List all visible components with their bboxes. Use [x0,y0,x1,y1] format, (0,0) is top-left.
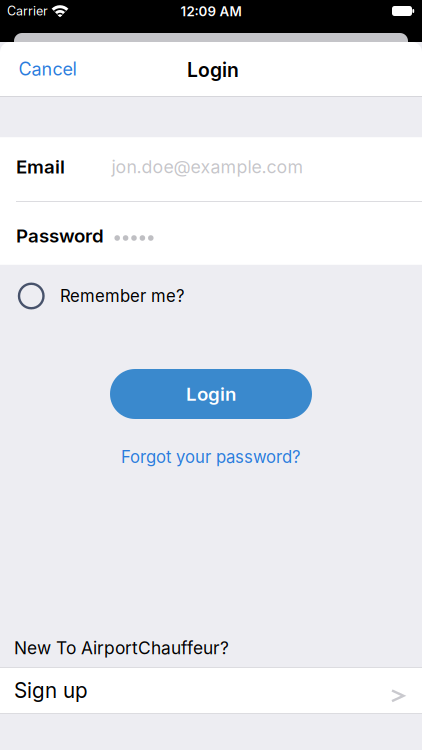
staticText: Email [16,155,65,178]
button[interactable]: Remember me? [0,276,422,316]
button[interactable]: Login [110,369,312,419]
button[interactable]: Sign up [0,668,422,713]
staticText: Forgot your password? [121,447,301,467]
button[interactable]: Password [0,201,422,264]
staticText: Login [187,58,239,82]
staticText: Remember me? [60,286,185,306]
staticText: Carrier [7,3,48,19]
staticText: jon.doe@example.com [111,156,303,177]
staticText: New To AirportChauffeur? [14,637,229,658]
staticText: Sign up [14,678,88,703]
staticText: Login [186,383,236,405]
staticText: Cancel [18,58,76,80]
staticText: Password [16,224,104,247]
button[interactable]: Forgot your password? [121,447,301,467]
button[interactable]: Email [0,137,422,201]
button[interactable]: Cancel [0,42,422,96]
staticText: 12:09 AM [180,3,241,19]
